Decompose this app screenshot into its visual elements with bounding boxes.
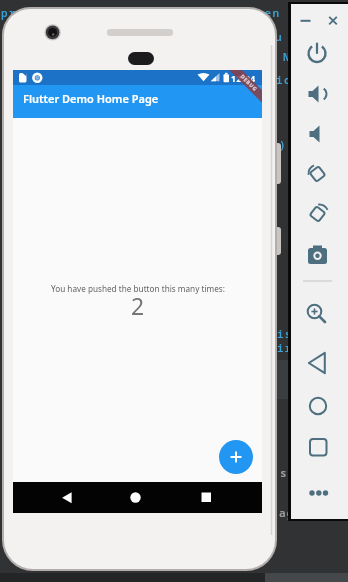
staticText: ir: [277, 340, 293, 355]
staticText: ): [279, 137, 287, 152]
staticText: ic: [276, 72, 292, 87]
staticText: N: [283, 49, 291, 64]
staticText: 12:04: [231, 73, 256, 85]
staticText: 2: [131, 290, 145, 321]
button[interactable]: [302, 119, 334, 149]
staticText: ,: [286, 146, 294, 161]
staticText: You have pushed the button this many tim…: [51, 283, 225, 294]
staticText: reen: [249, 5, 281, 20]
button[interactable]: [302, 478, 334, 508]
button[interactable]: [115, 482, 155, 513]
button[interactable]: [47, 482, 87, 513]
staticText: u: [275, 29, 283, 44]
button[interactable]: [297, 13, 314, 29]
button[interactable]: [184, 482, 224, 513]
button[interactable]: [302, 198, 334, 228]
staticText: sh: [280, 465, 296, 480]
button[interactable]: [302, 391, 334, 421]
button[interactable]: [302, 348, 334, 378]
staticText: Flutter Demo Home Page: [23, 91, 159, 106]
button[interactable]: [325, 13, 342, 29]
button[interactable]: [302, 79, 334, 109]
button[interactable]: [302, 239, 334, 269]
button[interactable]: [219, 440, 253, 474]
staticText: ag: [279, 505, 295, 520]
button[interactable]: [302, 432, 334, 462]
staticText: DEBUG: [239, 73, 259, 94]
button[interactable]: [302, 158, 334, 188]
button[interactable]: [302, 297, 334, 327]
staticText: is: [277, 326, 293, 341]
staticText: pri: [1, 5, 25, 20]
button[interactable]: [302, 38, 334, 68]
